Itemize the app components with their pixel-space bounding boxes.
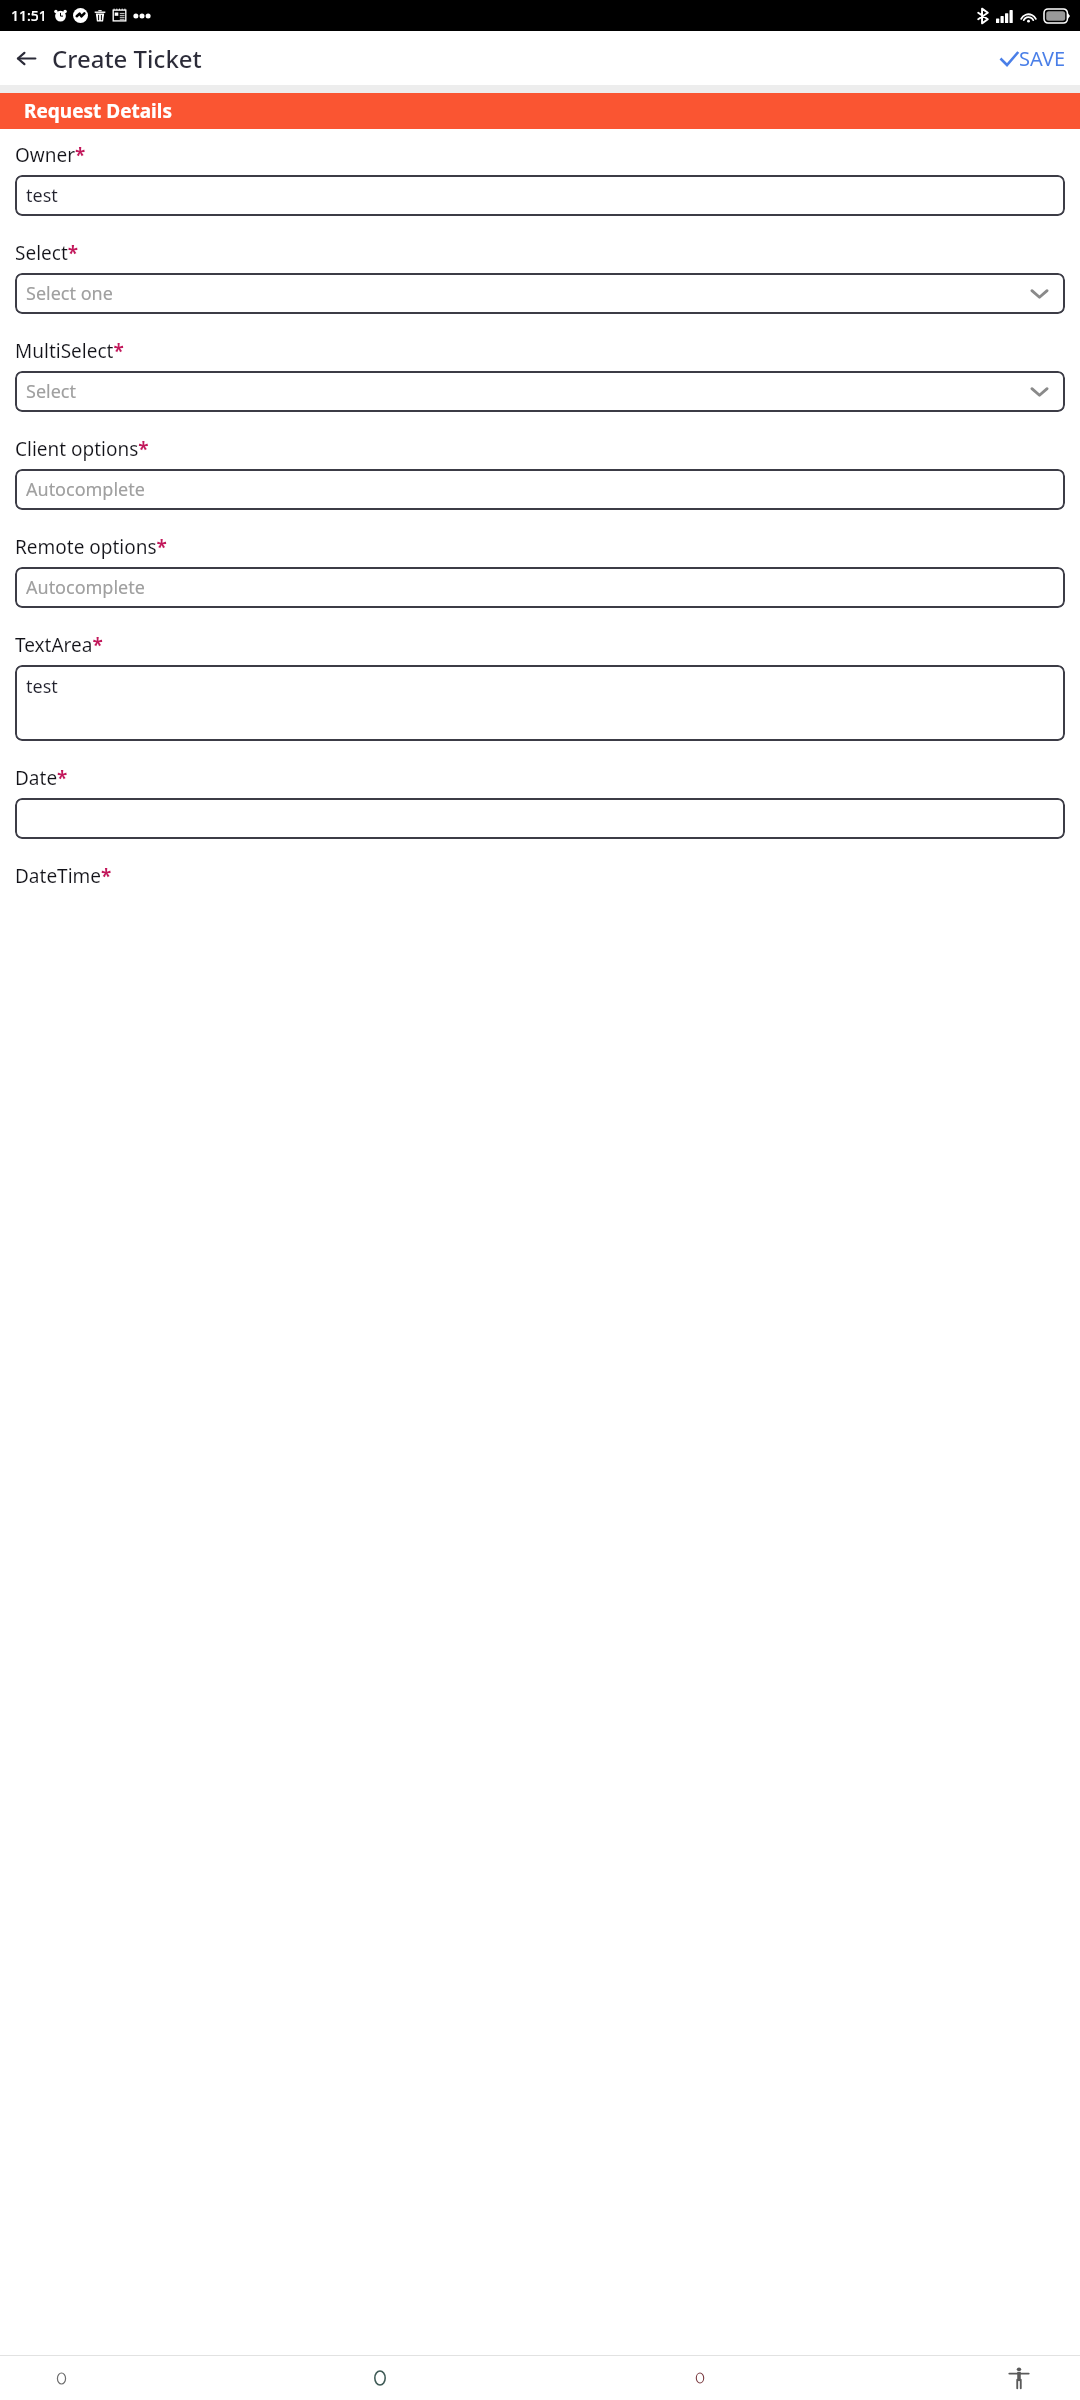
staticText: SAVE (1019, 45, 1066, 72)
staticText: Autocomplete (26, 477, 145, 502)
staticText: Request Details (24, 98, 172, 124)
staticText: MultiSelect* (15, 338, 124, 364)
staticText: Select (26, 379, 76, 404)
staticText: Owner* (15, 142, 86, 168)
button[interactable]: Home (363, 2361, 397, 2395)
staticText: Select* (15, 240, 79, 266)
button[interactable]: test (15, 665, 1065, 741)
staticText: test (26, 183, 58, 208)
staticText: Autocomplete (26, 575, 145, 600)
button[interactable]: Back (44, 2361, 78, 2395)
staticText: DateTime* (15, 863, 112, 889)
staticText: Select one (26, 281, 113, 306)
button[interactable]: Accessibility (1002, 2361, 1036, 2395)
staticText: Create Ticket (52, 42, 202, 75)
button[interactable]: SAVE (995, 39, 1070, 78)
staticText: Date* (15, 765, 68, 791)
button[interactable]: Recents (683, 2361, 717, 2395)
staticText: Client options* (15, 436, 149, 462)
button[interactable]: Autocomplete (15, 469, 1065, 510)
button[interactable]: Autocomplete (15, 567, 1065, 608)
button[interactable]: test (15, 175, 1065, 216)
button[interactable]: Select one (15, 273, 1065, 314)
staticText: 11:51 (11, 6, 47, 25)
staticText: Remote options* (15, 534, 167, 560)
staticText: test (26, 674, 58, 699)
button[interactable] (15, 798, 1065, 839)
button[interactable]: Back (4, 36, 48, 80)
staticText: TextArea* (15, 632, 103, 658)
button[interactable]: Select (15, 371, 1065, 412)
